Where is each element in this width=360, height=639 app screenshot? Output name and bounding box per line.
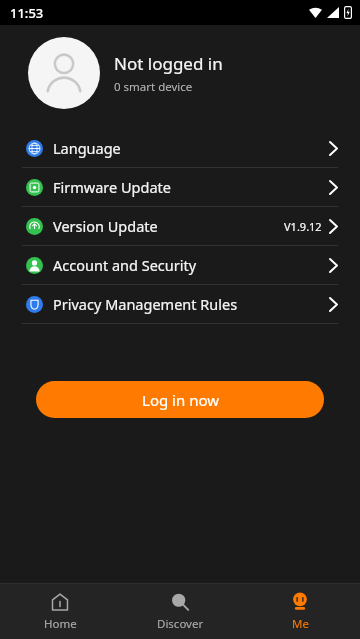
button[interactable]: Home xyxy=(0,584,120,639)
staticText: Home xyxy=(44,616,77,632)
button[interactable]: Discover xyxy=(120,584,240,639)
staticText: 0 smart device xyxy=(114,79,193,95)
button[interactable]: Language xyxy=(0,129,360,167)
staticText: Language xyxy=(53,138,121,158)
staticText: Version Update xyxy=(53,216,158,236)
staticText: Log in now xyxy=(142,390,219,410)
staticText: 11:53 xyxy=(10,4,44,22)
staticText: Discover xyxy=(157,616,204,632)
staticText: Firmware Update xyxy=(53,177,171,197)
staticText: Account and Security xyxy=(53,255,197,275)
staticText: V1.9.12 xyxy=(284,219,322,234)
button[interactable]: Account and Security xyxy=(0,246,360,284)
staticText: Me xyxy=(292,616,309,632)
staticText: Privacy Management Rules xyxy=(53,294,238,314)
button[interactable]: Me xyxy=(240,584,360,639)
button[interactable]: Log in now xyxy=(36,381,324,418)
button[interactable]: Privacy Management Rules xyxy=(0,285,360,323)
button[interactable]: Version Update xyxy=(0,207,360,245)
button[interactable]: Firmware Update xyxy=(0,168,360,206)
staticText: Not logged in xyxy=(114,52,223,75)
button[interactable]: Not logged in xyxy=(0,25,360,121)
